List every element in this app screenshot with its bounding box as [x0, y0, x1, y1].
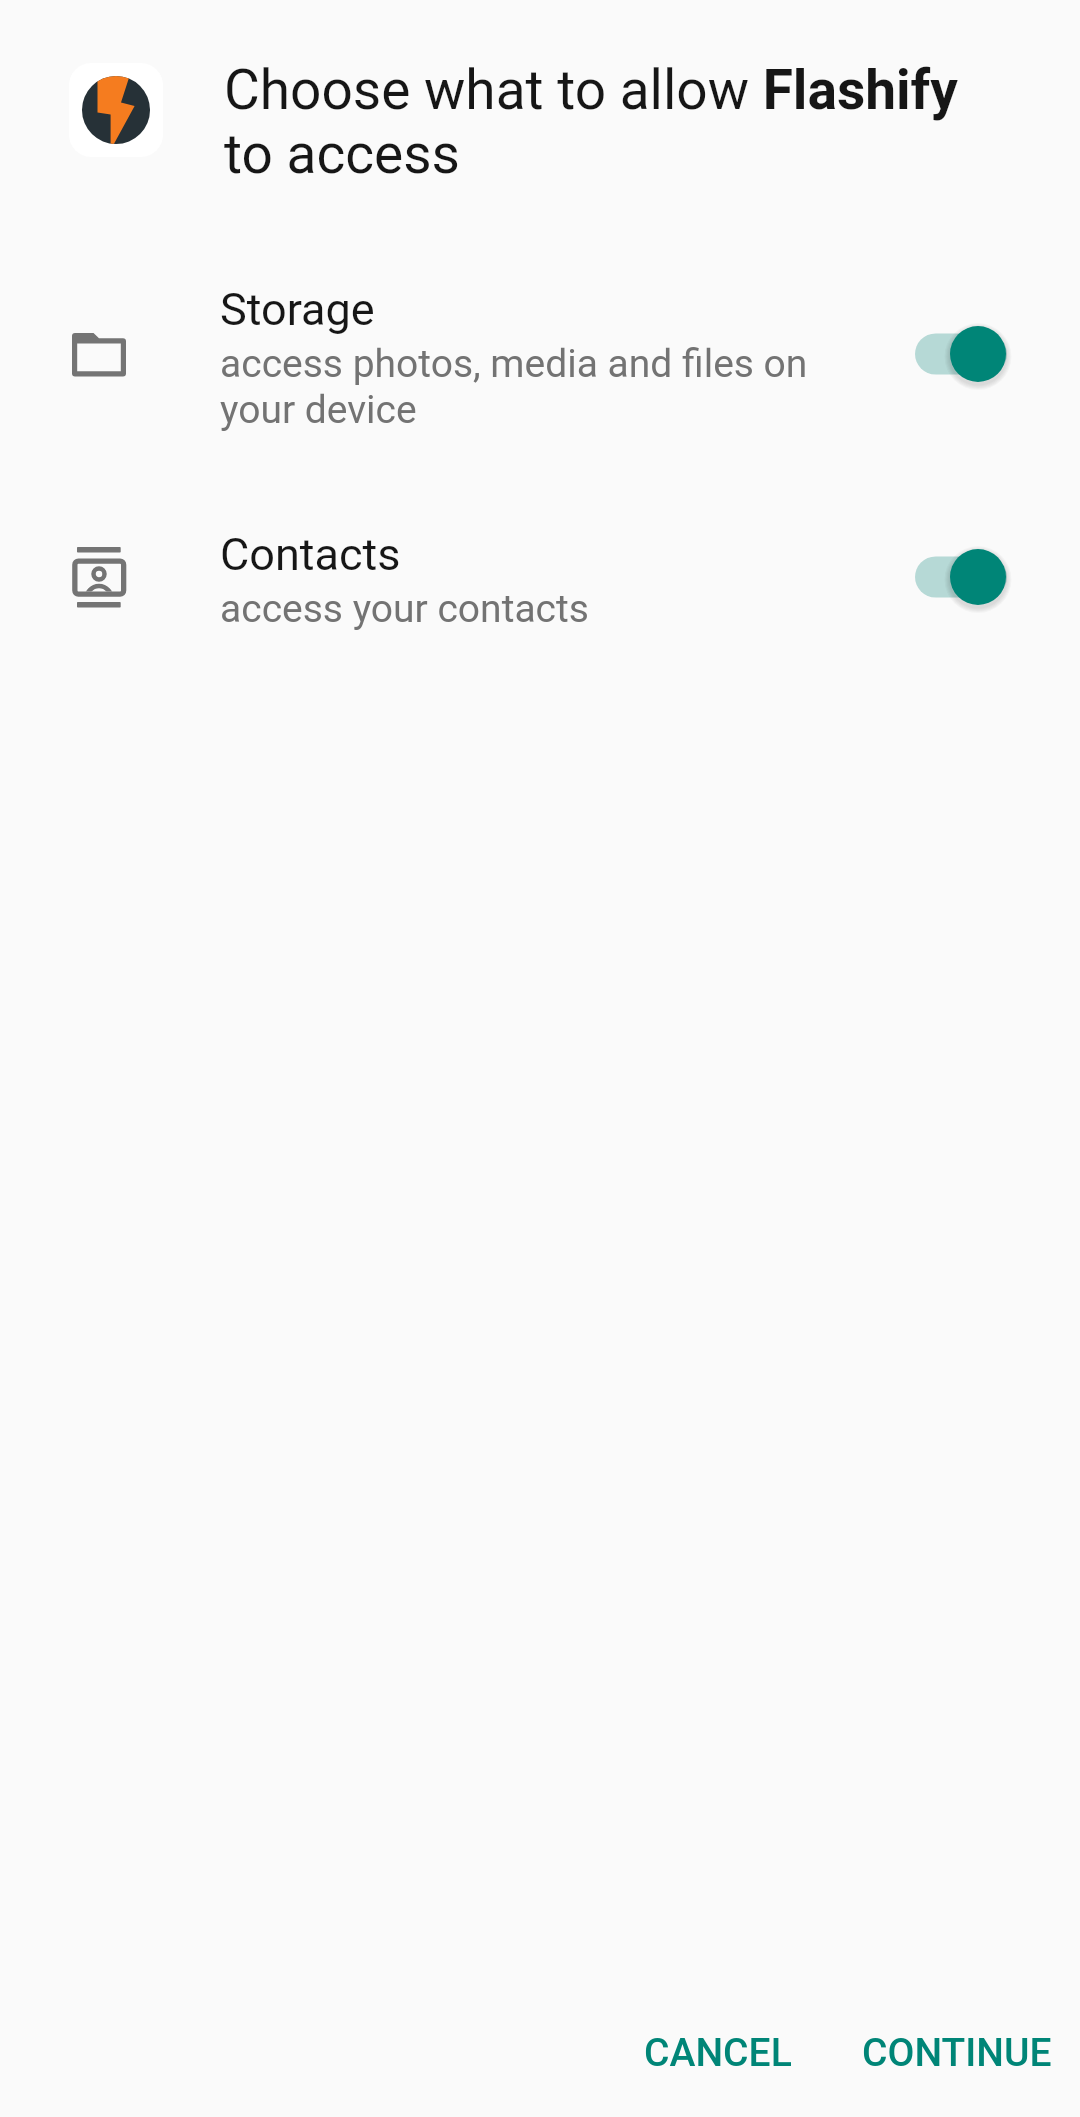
button[interactable]: Storage permission toggle: [903, 314, 1021, 394]
button[interactable]: CANCEL: [622, 2012, 814, 2094]
staticText: access your contacts: [220, 586, 589, 632]
button[interactable]: [0, 507, 1080, 644]
staticText: CANCEL: [644, 2030, 792, 2076]
button[interactable]: Contacts permission toggle: [903, 537, 1021, 617]
staticText: Contacts: [220, 528, 401, 581]
button[interactable]: [0, 262, 1080, 444]
staticText: Choose what to allow Flashify to access: [224, 58, 976, 186]
staticText: access photos, media and files on your d…: [220, 341, 840, 433]
staticText: Storage: [220, 283, 375, 336]
button[interactable]: CONTINUE: [840, 2012, 1074, 2094]
staticText: CONTINUE: [862, 2030, 1052, 2076]
